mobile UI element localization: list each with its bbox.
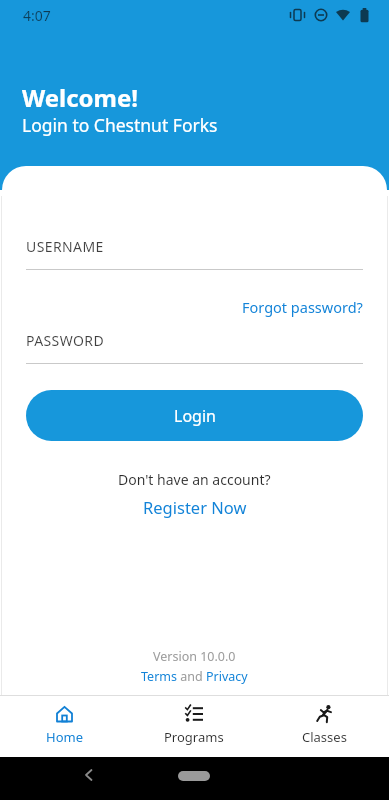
staticText: Classes — [302, 728, 347, 746]
button[interactable]: Classes — [259, 696, 389, 757]
staticText: Home — [46, 728, 83, 746]
staticText: Programs — [164, 728, 224, 746]
staticText: Login to Chestnut Forks — [22, 113, 218, 137]
staticText: 4:07 — [23, 6, 51, 25]
staticText: Welcome! — [22, 81, 139, 114]
button[interactable]: Home — [0, 696, 129, 757]
button[interactable]: Programs — [129, 696, 259, 757]
staticText: and — [177, 668, 206, 685]
staticText: Login — [174, 405, 216, 427]
button[interactable]: Forgot password? — [242, 297, 363, 317]
staticText: USERNAME — [26, 237, 104, 256]
button[interactable]: Register Now — [143, 496, 247, 518]
staticText: PASSWORD — [26, 331, 105, 350]
staticText: Don't have an account? — [118, 470, 271, 489]
staticText: Version 10.0.0 — [153, 648, 236, 665]
button[interactable]: Login — [26, 390, 363, 441]
button[interactable]: Privacy — [206, 668, 248, 685]
button[interactable]: Terms — [141, 668, 177, 685]
